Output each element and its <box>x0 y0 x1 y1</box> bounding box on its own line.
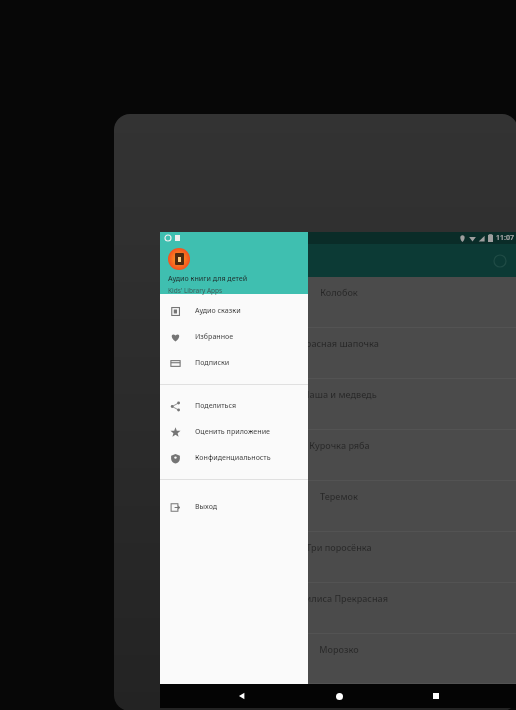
staticText: Колобок <box>320 286 358 298</box>
button[interactable]: Избранное <box>160 324 308 350</box>
staticText: Морозко <box>319 643 359 655</box>
button[interactable]: Back <box>227 684 257 708</box>
staticText: Поделиться <box>195 401 237 411</box>
button[interactable]: Курочка ряба <box>160 430 516 481</box>
staticText: Оценить приложение <box>195 427 271 437</box>
staticText: Курочка ряба <box>309 439 370 451</box>
button[interactable]: Три поросёнка <box>160 532 516 583</box>
button[interactable]: Поделиться <box>160 393 308 419</box>
button[interactable]: Оценить приложение <box>160 419 308 445</box>
staticText: 11:07 <box>496 233 514 243</box>
staticText: Подписки <box>195 358 230 368</box>
staticText: Маша и медведь <box>301 388 377 400</box>
staticText: Избранное <box>195 332 234 342</box>
button[interactable]: Подписки <box>160 350 308 376</box>
staticText: Теремок <box>320 490 358 502</box>
button[interactable]: Recents <box>421 684 451 708</box>
staticText: Аудио книги для детей <box>168 274 248 284</box>
button[interactable]: Help <box>490 251 510 271</box>
staticText: Аудио сказки <box>195 306 241 316</box>
button[interactable]: Морозко <box>160 634 516 684</box>
staticText: Kids' Library Apps <box>168 286 223 295</box>
button[interactable]: Теремок <box>160 481 516 532</box>
staticText: Василиса Прекрасная <box>290 592 388 604</box>
button[interactable]: Home <box>324 684 354 708</box>
button[interactable]: Выход <box>160 494 308 520</box>
button[interactable]: Красная шапочка <box>160 328 516 379</box>
button[interactable]: Аудио сказки <box>160 298 308 324</box>
staticText: Выход <box>195 502 218 512</box>
staticText: Красная шапочка <box>300 337 379 349</box>
button[interactable]: Колобок <box>160 277 516 328</box>
staticText: Конфиденциальность <box>195 453 271 463</box>
button[interactable]: Конфиденциальность <box>160 445 308 471</box>
staticText: Три поросёнка <box>306 541 372 553</box>
button[interactable]: Василиса Прекрасная <box>160 583 516 634</box>
button[interactable]: Маша и медведь <box>160 379 516 430</box>
